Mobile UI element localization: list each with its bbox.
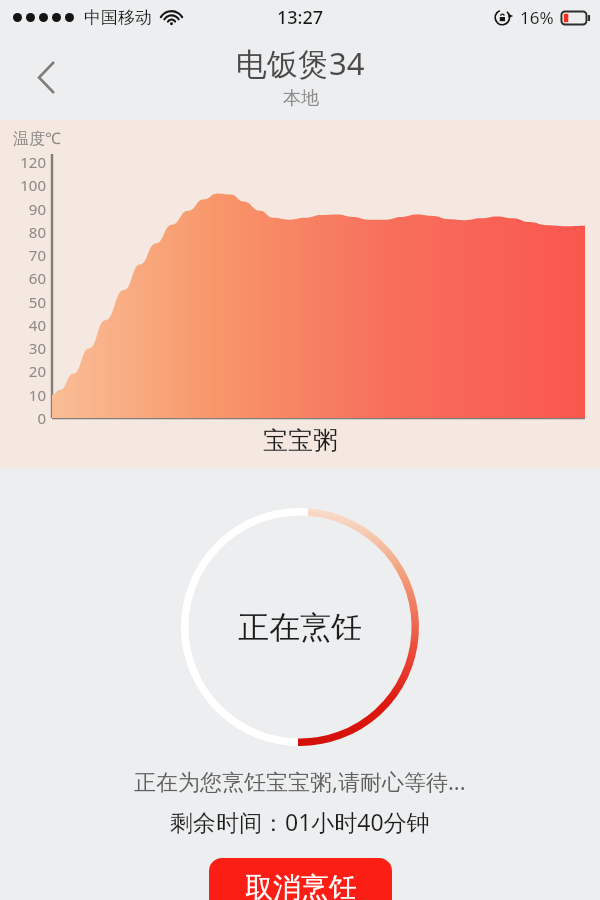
staticText: 20 [2, 361, 46, 381]
staticText: 90 [2, 199, 46, 219]
staticText: 宝宝粥 [263, 425, 338, 456]
staticText: 正在为您烹饪宝宝粥,请耐心等待... [134, 766, 466, 796]
staticText: 取消烹饪 [245, 870, 357, 900]
staticText: 10 [2, 385, 46, 405]
staticText: 电饭煲34 [236, 42, 365, 84]
staticText: 剩余时间：01小时40分钟 [170, 806, 430, 837]
staticText: 0 [2, 408, 46, 428]
staticText: 30 [2, 338, 46, 358]
staticText: 70 [2, 245, 46, 265]
staticText: 本地 [283, 87, 319, 110]
staticText: 80 [2, 222, 46, 242]
staticText: 100 [2, 175, 46, 195]
staticText: 40 [2, 315, 46, 335]
staticText: 120 [2, 152, 46, 172]
staticText: 60 [2, 268, 46, 288]
staticText: 50 [2, 292, 46, 312]
staticText: 16% [520, 6, 554, 29]
button[interactable]: Back [20, 51, 72, 103]
staticText: 中国移动 [84, 7, 152, 28]
staticText: 温度℃ [13, 127, 61, 149]
staticText: 正在烹饪 [238, 608, 362, 647]
staticText: 13:27 [277, 5, 324, 30]
button[interactable]: 取消烹饪 [209, 858, 392, 900]
